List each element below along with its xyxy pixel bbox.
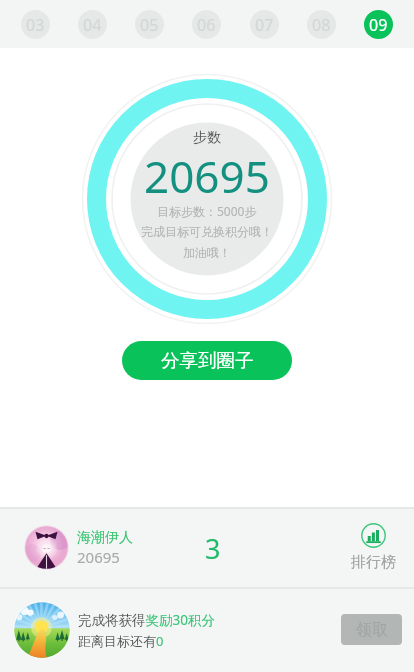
staticText: 分享到圈子 bbox=[161, 349, 254, 372]
button[interactable]: 分享到圈子 bbox=[122, 341, 292, 380]
staticText: 目标步数：5000步 bbox=[157, 203, 257, 219]
staticText: 20695 bbox=[77, 547, 120, 567]
button[interactable]: 09 bbox=[364, 10, 393, 39]
staticText: 3 bbox=[205, 530, 221, 567]
button[interactable]: 海潮伊人 bbox=[0, 509, 414, 587]
staticText: 步数 bbox=[193, 129, 221, 147]
button[interactable]: 领取 bbox=[341, 614, 402, 645]
staticText: 09 bbox=[369, 14, 388, 36]
staticText: 距离目标还有0 bbox=[78, 632, 164, 650]
staticText: 20695 bbox=[144, 146, 270, 206]
staticText: 排行榜 bbox=[351, 553, 396, 572]
staticText: 加油哦！ bbox=[183, 245, 231, 260]
staticText: 07 bbox=[255, 14, 274, 36]
staticText: 06 bbox=[197, 14, 216, 36]
staticText: 完成将获得奖励30积分 bbox=[78, 611, 215, 629]
staticText: 03 bbox=[26, 14, 45, 36]
button[interactable]: 06 bbox=[192, 10, 221, 39]
button[interactable]: 排行榜 bbox=[345, 519, 401, 579]
button[interactable]: 05 bbox=[135, 10, 164, 39]
staticText: 04 bbox=[83, 14, 102, 36]
button[interactable]: 08 bbox=[307, 10, 336, 39]
staticText: 08 bbox=[312, 14, 331, 36]
staticText: 海潮伊人 bbox=[77, 529, 133, 547]
staticText: 领取 bbox=[356, 620, 388, 640]
button[interactable]: 07 bbox=[250, 10, 279, 39]
button[interactable]: 04 bbox=[78, 10, 107, 39]
staticText: 完成目标可兑换积分哦！ bbox=[141, 224, 273, 239]
button[interactable]: 03 bbox=[21, 10, 50, 39]
staticText: 05 bbox=[140, 14, 159, 36]
